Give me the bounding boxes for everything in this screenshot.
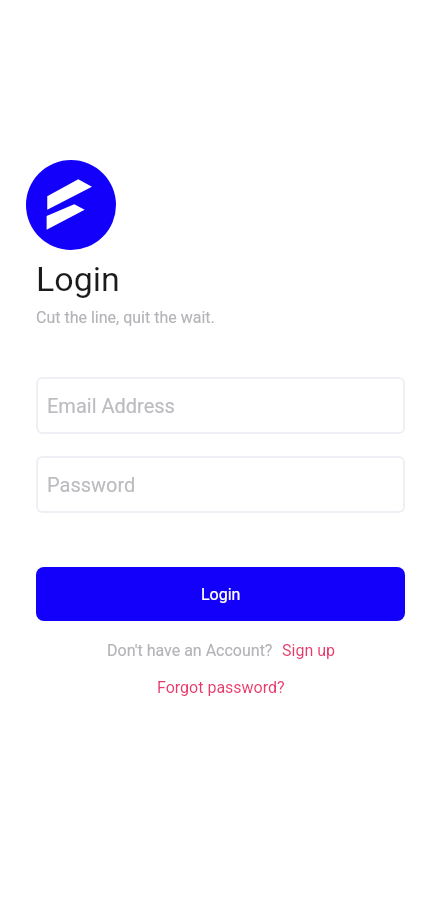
staticText: Sign up — [282, 641, 335, 660]
staticText: Login — [36, 259, 120, 299]
staticText: Forgot password? — [157, 678, 285, 697]
staticText: Email Address — [47, 394, 175, 417]
staticText: Login — [201, 585, 241, 604]
staticText: Cut the line, quit the wait. — [36, 308, 215, 327]
staticText: Don't have an Account? — [107, 641, 273, 660]
other: App logo — [26, 160, 116, 250]
button[interactable]: Forgot password? — [149, 674, 293, 701]
button[interactable]: Login — [36, 567, 405, 621]
button[interactable]: Sign up — [282, 627, 335, 674]
button[interactable]: Email Address — [36, 377, 405, 434]
button[interactable]: Password — [36, 456, 405, 513]
staticText: Password — [47, 473, 136, 496]
